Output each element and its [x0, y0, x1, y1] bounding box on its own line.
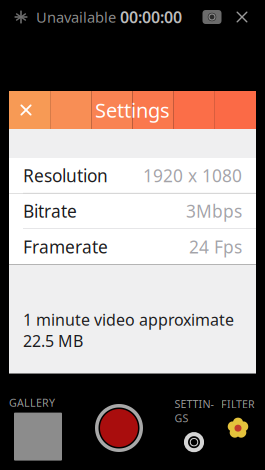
- button[interactable]: Framerate: [9, 229, 256, 264]
- staticText: 00:00:00: [116, 6, 182, 28]
- staticText: Unavailable: [36, 7, 116, 27]
- staticText: 24 Fps: [189, 235, 242, 258]
- staticText: Bitrate: [23, 199, 77, 222]
- staticText: 1 minute video approximate 22.5 MB: [23, 309, 234, 351]
- staticText: FILTER: [221, 397, 255, 411]
- staticText: GALLERY: [9, 395, 55, 410]
- button[interactable]: Bitrate: [9, 193, 256, 229]
- staticText: 3Mbps: [186, 199, 242, 222]
- button[interactable]: GALLERY: [9, 395, 67, 461]
- staticText: Settings: [95, 97, 170, 123]
- button[interactable]: Flash: [6, 3, 36, 31]
- staticText: Framerate: [23, 235, 108, 258]
- button[interactable]: Close settings: [9, 91, 43, 129]
- button[interactable]: Switch camera: [197, 3, 227, 31]
- button[interactable]: Close: [227, 3, 257, 31]
- staticText: 1920 x 1080: [143, 164, 242, 187]
- staticText: Resolution: [23, 164, 108, 187]
- button[interactable]: FILTER: [217, 397, 259, 459]
- staticText: SETTINGS: [174, 397, 213, 425]
- button[interactable]: SETTINGS: [171, 397, 217, 459]
- button[interactable]: Resolution: [9, 158, 256, 193]
- button[interactable]: Record: [92, 395, 146, 461]
